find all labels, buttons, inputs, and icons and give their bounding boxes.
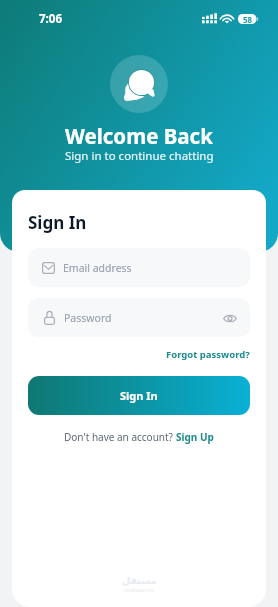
staticText: Don't have an account? bbox=[64, 430, 176, 444]
button[interactable]: Email address bbox=[28, 248, 250, 287]
staticText: Sign in to continue chatting bbox=[65, 148, 214, 164]
button[interactable]: Password bbox=[28, 298, 250, 337]
staticText: mostaql.com bbox=[124, 587, 155, 594]
staticText: Sign In bbox=[28, 211, 87, 234]
staticText: Email address bbox=[63, 261, 132, 275]
button[interactable]: Sign In bbox=[28, 376, 250, 415]
staticText: 7:06 bbox=[39, 11, 62, 27]
staticText: Welcome Back bbox=[65, 122, 213, 150]
button[interactable]: Sign Up bbox=[176, 430, 214, 444]
staticText: Password bbox=[64, 311, 220, 325]
button[interactable]: Show password bbox=[220, 308, 240, 328]
staticText: 58 bbox=[243, 14, 253, 24]
staticText: Sign In bbox=[120, 388, 158, 403]
staticText: مستقل bbox=[122, 575, 157, 586]
button[interactable]: Forgot password? bbox=[166, 348, 250, 361]
